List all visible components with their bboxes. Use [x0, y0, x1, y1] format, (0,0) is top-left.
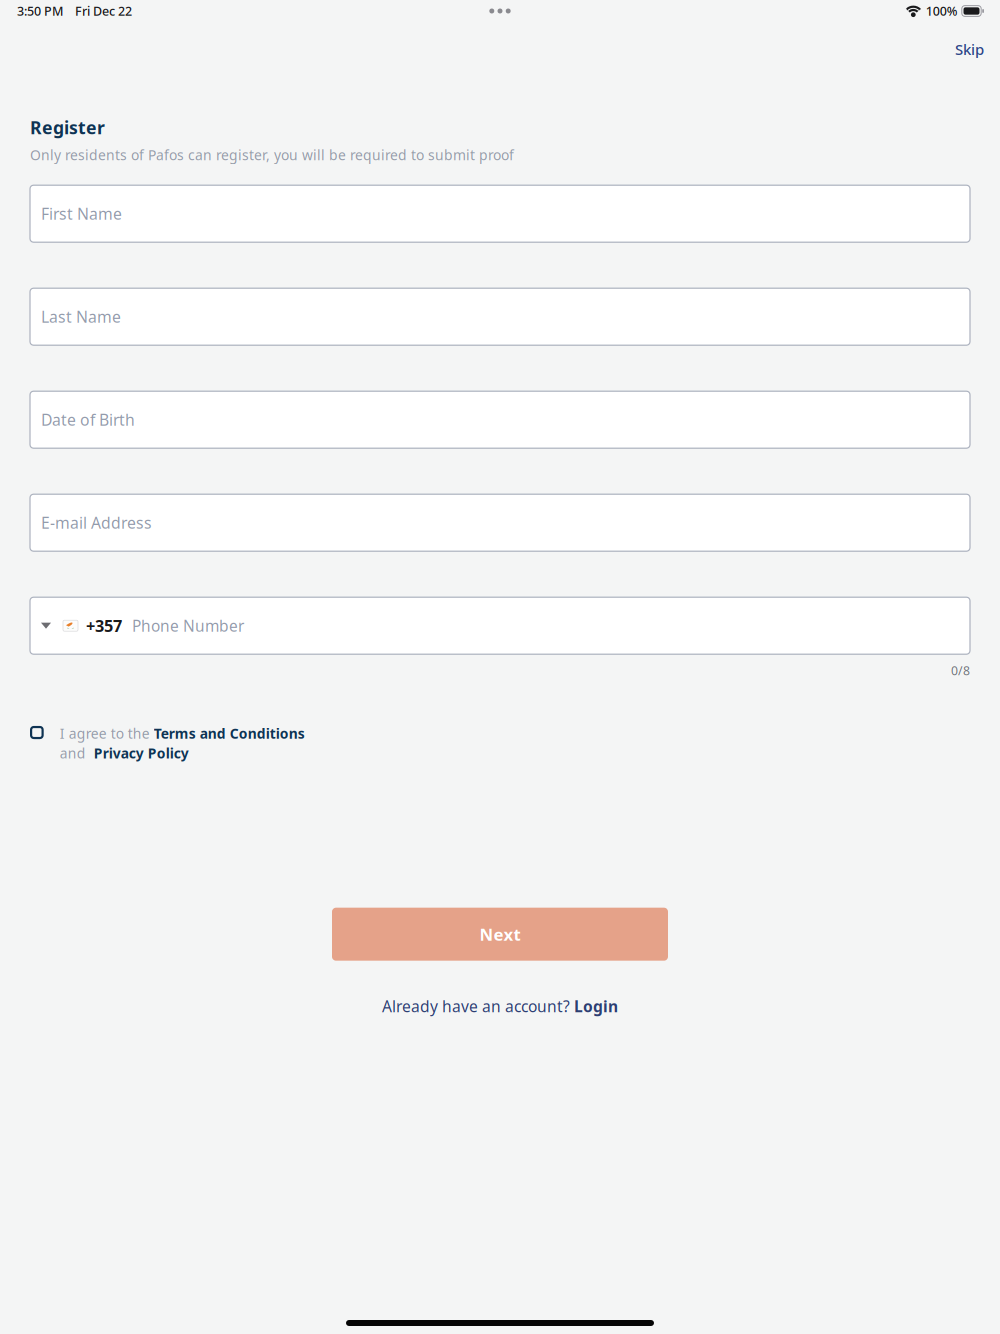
button[interactable]: E-mail Address: [30, 494, 970, 551]
staticText: +357: [86, 615, 122, 637]
button[interactable]: Last Name: [30, 288, 970, 345]
button[interactable]: I agree to the: [30, 724, 970, 763]
staticText: 100%: [926, 2, 958, 20]
staticText: Date of Birth: [41, 409, 135, 430]
staticText: E-mail Address: [41, 512, 152, 533]
staticText: I agree to the: [60, 724, 154, 743]
button[interactable]: Already have an account?: [370, 990, 630, 1023]
staticText: Terms and Conditions: [154, 724, 305, 743]
staticText: Phone Number: [132, 615, 244, 636]
staticText: First Name: [41, 203, 122, 224]
button[interactable]: Date of Birth: [30, 391, 970, 448]
staticText: Register: [30, 115, 105, 139]
staticText: Privacy Policy: [94, 744, 189, 763]
button[interactable]: Next: [332, 908, 668, 961]
button[interactable]: Skip: [939, 30, 1000, 68]
staticText: 3:50 PM: [17, 2, 64, 20]
staticText: Last Name: [41, 306, 121, 327]
staticText: Login: [574, 996, 618, 1017]
staticText: Already have an account?: [382, 996, 574, 1017]
staticText: Next: [479, 923, 520, 946]
staticText: Fri Dec 22: [75, 2, 132, 20]
staticText: and: [60, 744, 94, 763]
staticText: Skip: [955, 39, 984, 59]
staticText: Only residents of Pafos can register, yo…: [30, 145, 514, 164]
button[interactable]: First Name: [30, 185, 970, 242]
button[interactable]: +357: [30, 597, 970, 654]
staticText: 0/8: [951, 662, 970, 679]
